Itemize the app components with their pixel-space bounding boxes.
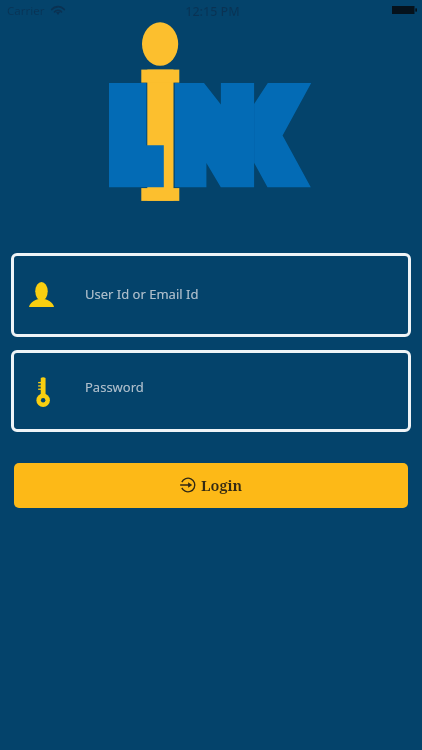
other: Battery: [392, 6, 417, 14]
button[interactable]: User: [11, 253, 411, 337]
button[interactable]: Password: [11, 350, 411, 432]
other: Wi-Fi: [51, 6, 65, 15]
staticText: 12:15 PM: [185, 3, 240, 20]
staticText: Carrier: [7, 3, 45, 19]
staticText: User Id or Email Id: [85, 285, 199, 303]
other: Sign in: [180, 477, 196, 493]
other: User: [29, 282, 54, 307]
button[interactable]: Sign in: [14, 463, 408, 508]
staticText: Login: [201, 475, 243, 495]
other: Password: [36, 377, 49, 407]
staticText: Password: [85, 378, 144, 396]
